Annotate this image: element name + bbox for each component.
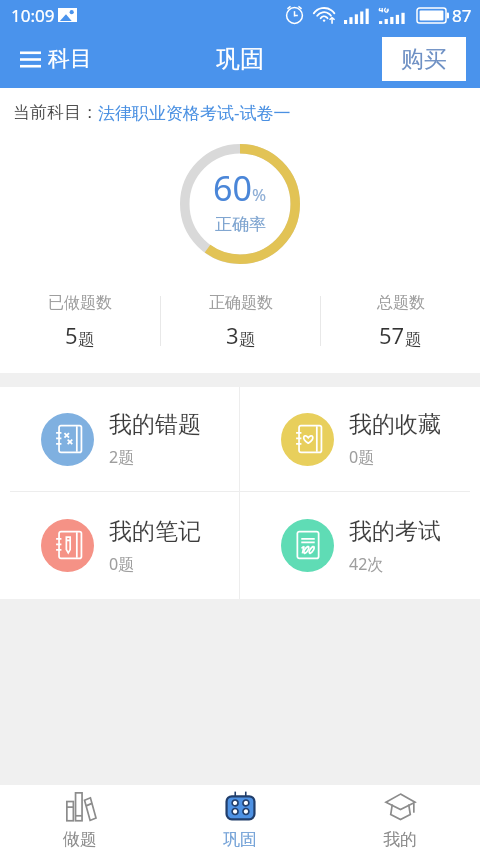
staticText: 5 <box>65 320 78 350</box>
staticText: 2题 <box>109 446 135 468</box>
button[interactable]: 我的考试 <box>240 492 480 599</box>
button[interactable]: 总题数 <box>321 276 480 366</box>
staticText: 我的 <box>383 829 417 850</box>
button[interactable]: 我的收藏 <box>240 387 480 491</box>
staticText: 我的笔记 <box>109 517 201 546</box>
button[interactable]: 购买 <box>382 37 466 81</box>
staticText: 57 <box>379 320 405 350</box>
staticText: 巩固 <box>216 44 264 74</box>
staticText: 0题 <box>349 446 375 468</box>
button[interactable]: 我的笔记 <box>0 492 239 599</box>
button[interactable]: 做题 <box>0 785 160 853</box>
staticText: 我的考试 <box>349 517 441 546</box>
staticText: 做题 <box>63 829 97 850</box>
staticText: 正确题数 <box>209 293 273 313</box>
staticText: 60 <box>213 165 252 211</box>
staticText: % <box>252 183 267 206</box>
staticText: 我的错题 <box>109 410 201 439</box>
staticText: 正确率 <box>215 214 266 235</box>
staticText: 0题 <box>109 553 135 575</box>
button[interactable]: 我的错题 <box>0 387 239 491</box>
staticText: 题 <box>78 329 95 350</box>
button[interactable]: 正确题数 <box>161 276 320 366</box>
button[interactable]: 我的 <box>320 785 480 853</box>
button[interactable]: 已做题数 <box>0 276 160 366</box>
staticText: 题 <box>405 329 422 350</box>
staticText: 巩固 <box>223 829 257 850</box>
staticText: 题 <box>239 329 256 350</box>
staticText: 3 <box>226 320 239 350</box>
staticText: 10:09 <box>11 4 55 27</box>
staticText: 我的收藏 <box>349 410 441 439</box>
staticText: 总题数 <box>377 293 425 313</box>
staticText: 当前科目： <box>13 102 98 123</box>
button[interactable]: 巩固 <box>160 785 320 853</box>
button[interactable]: 当前科目： <box>0 88 480 130</box>
staticText: 87 <box>452 4 472 27</box>
staticText: 42次 <box>349 553 384 575</box>
staticText: 科目 <box>48 45 92 73</box>
staticText: 法律职业资格考试-试卷一 <box>98 101 291 124</box>
staticText: 购买 <box>401 45 447 74</box>
staticText: 已做题数 <box>48 293 112 313</box>
button[interactable]: 科目 <box>0 37 104 81</box>
